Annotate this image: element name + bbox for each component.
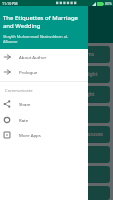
button[interactable]: Closing Words from the Author [3, 166, 110, 183]
button[interactable]: What to do Before the Wedding Night [3, 66, 110, 83]
staticText: Communicate [5, 88, 33, 94]
staticText: Prologue [19, 69, 38, 75]
button[interactable]: The Rights of Both of the Spouses [3, 146, 110, 163]
staticText: 80% [105, 1, 112, 6]
staticText: The Etiquettes of Marriage and Wedding [3, 14, 78, 30]
staticText: The Rights of Both of the Spouses [9, 151, 89, 158]
staticText: The Etiquettes of the Wedding Night [9, 91, 95, 98]
staticText: Rulings of the Marriage and its Aims [9, 51, 95, 58]
button[interactable]: Share [0, 96, 88, 111]
button[interactable]: Rulings of the Marriage and its Aims [3, 46, 110, 63]
button[interactable]: References Used within this book [3, 186, 110, 200]
staticText: Shaykh Muhammad Nasiruddeen al- Albanee [3, 34, 69, 44]
button[interactable]: Prologue [0, 64, 88, 79]
staticText: Rate [19, 117, 29, 123]
staticText: 11:10 PM [2, 1, 18, 6]
button[interactable]: Etiquettes of Intimacy between Spouses [3, 126, 110, 143]
button[interactable]: About Author [0, 49, 88, 64]
button[interactable]: More Apps [0, 127, 88, 142]
button[interactable]: The Rulings of the Walima Feast [3, 106, 110, 123]
staticText: About Author [19, 54, 47, 60]
button[interactable]: Rate [0, 112, 88, 127]
staticText: Share [19, 101, 31, 107]
staticText: More Apps [19, 132, 41, 138]
staticText: Etiquettes of Intimacy between Spouses [9, 131, 103, 138]
button[interactable]: The Etiquettes of the Wedding Night [3, 86, 110, 103]
staticText: What to do Before the Wedding Night [9, 71, 98, 78]
